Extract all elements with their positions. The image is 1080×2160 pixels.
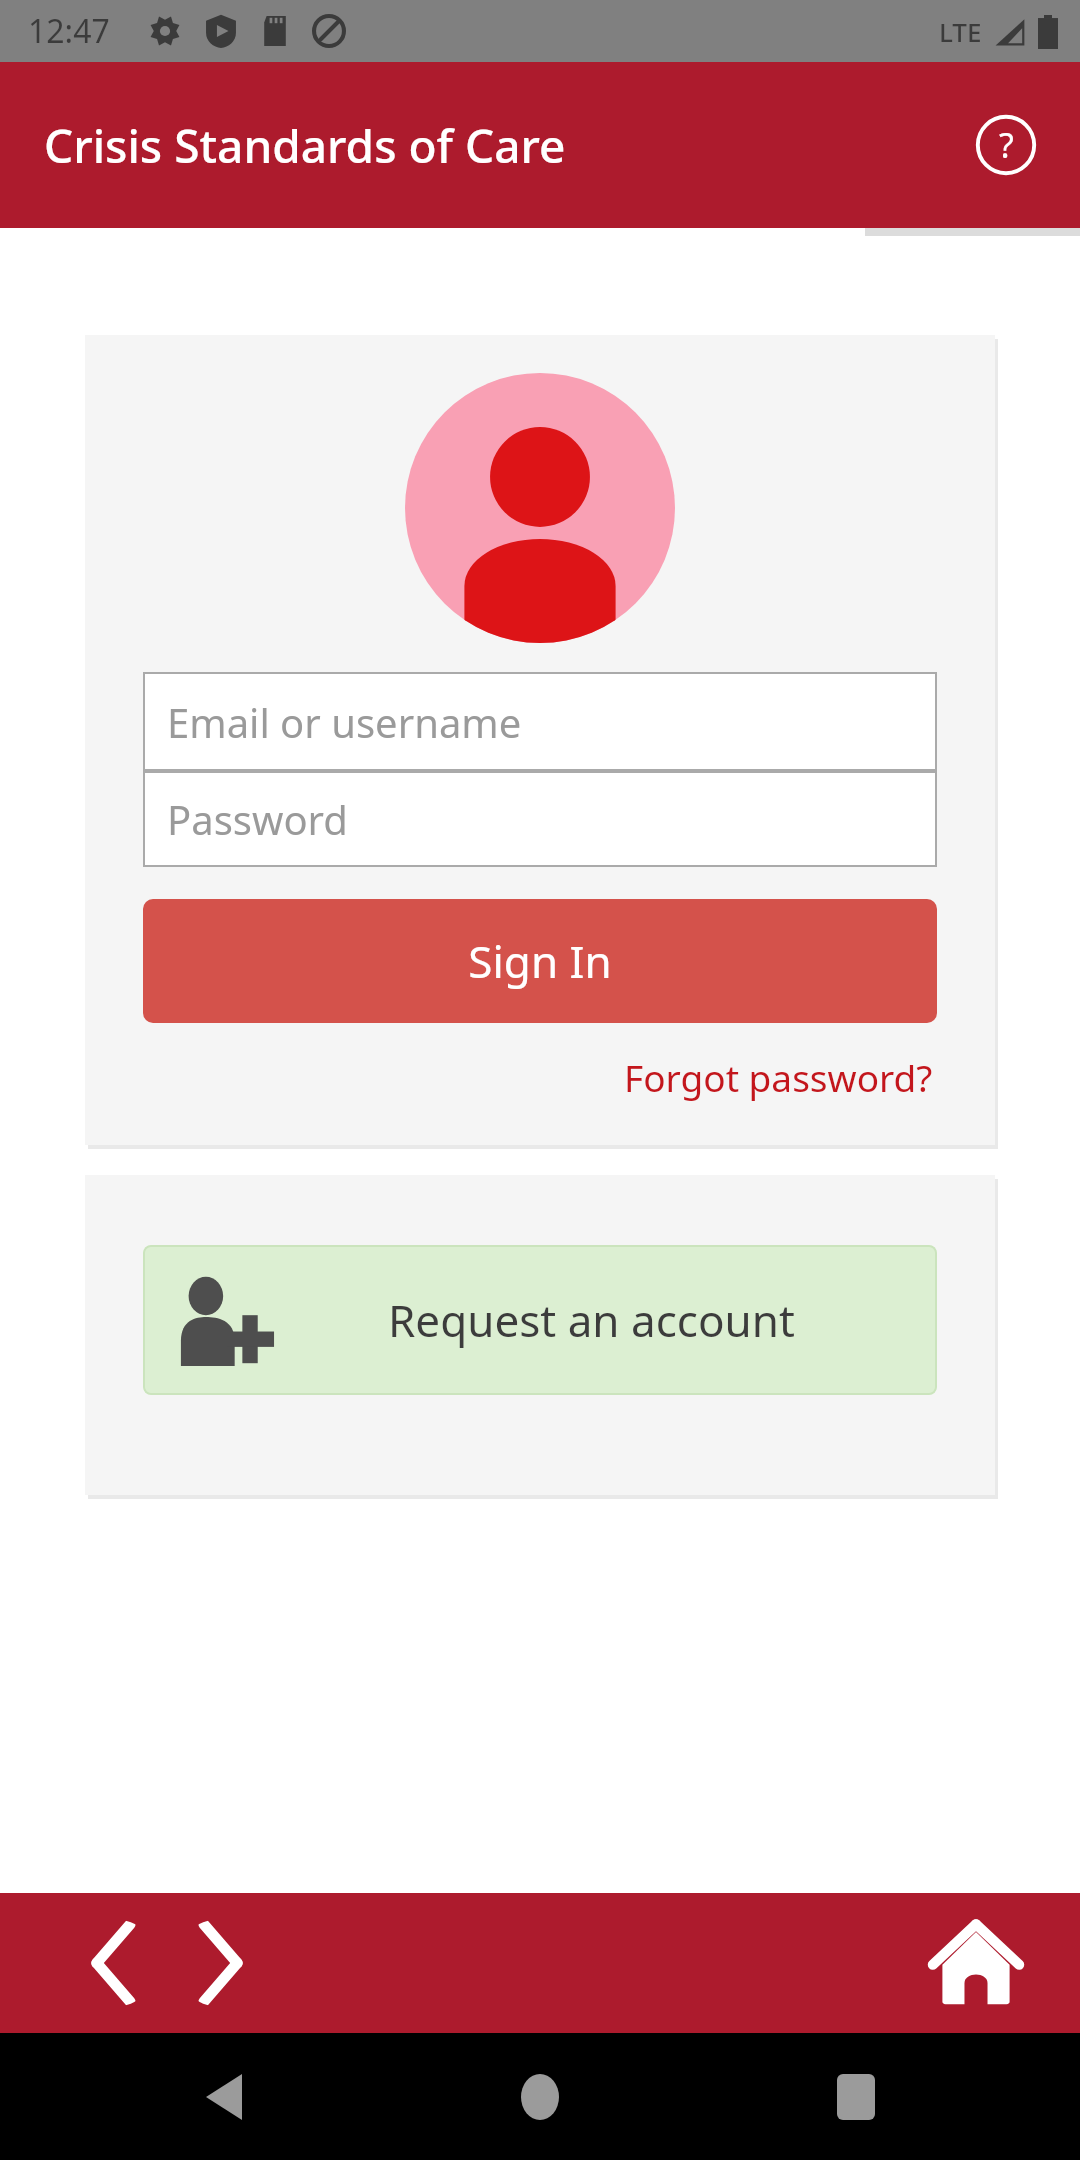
staticText: Crisis Standards of Care: [44, 114, 566, 177]
button[interactable]: Recent apps: [812, 2053, 900, 2141]
button[interactable]: Forgot password?: [620, 1048, 937, 1106]
button[interactable]: Home: [924, 1911, 1028, 2015]
button[interactable]: Help: [968, 107, 1044, 183]
staticText: Password: [167, 792, 348, 846]
button[interactable]: Forward: [176, 1919, 264, 2007]
staticText: Sign In: [468, 931, 612, 991]
button[interactable]: Back: [180, 2053, 268, 2141]
staticText: Email or username: [167, 695, 522, 749]
staticText: 12:47: [28, 9, 110, 53]
staticText: Request an account: [388, 1290, 795, 1350]
button[interactable]: Home: [496, 2053, 584, 2141]
staticText: ?: [999, 122, 1014, 168]
button[interactable]: Email or username: [143, 672, 937, 771]
staticText: Forgot password?: [624, 1052, 933, 1102]
staticText: LTE: [939, 14, 982, 49]
button[interactable]: Password: [143, 771, 937, 867]
button[interactable]: Back: [70, 1919, 158, 2007]
button[interactable]: Request an account: [143, 1245, 937, 1395]
button[interactable]: Sign In: [143, 899, 937, 1023]
